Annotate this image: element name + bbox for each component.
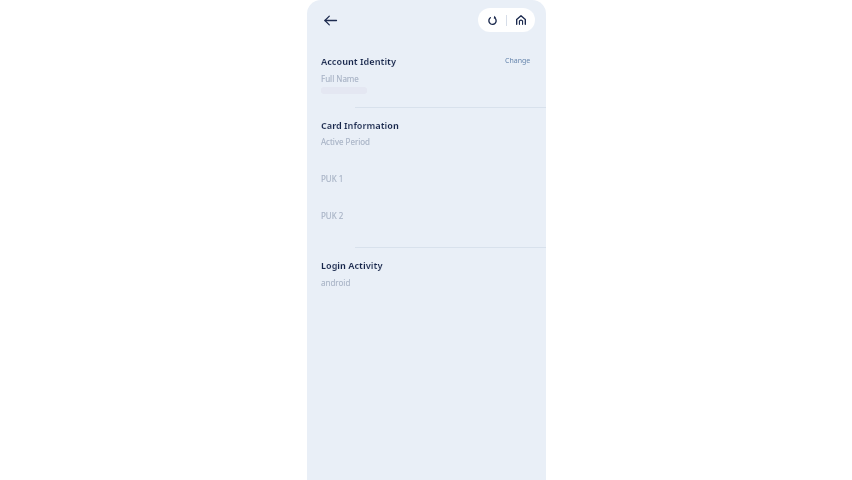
staticText: android (321, 277, 351, 288)
staticText: Active Period (321, 136, 371, 147)
staticText: Card Information (321, 119, 399, 131)
staticText: PUK 1 (321, 173, 344, 184)
button[interactable]: Home (507, 8, 535, 32)
button[interactable]: Refresh (478, 8, 506, 32)
button[interactable]: Back (316, 6, 344, 34)
staticText: Login Activity (321, 259, 383, 271)
staticText: Full Name (321, 73, 359, 84)
staticText: Change (505, 56, 531, 66)
staticText: PUK 2 (321, 210, 344, 221)
button[interactable]: Change (503, 54, 533, 68)
staticText: Account Identity (321, 55, 397, 67)
